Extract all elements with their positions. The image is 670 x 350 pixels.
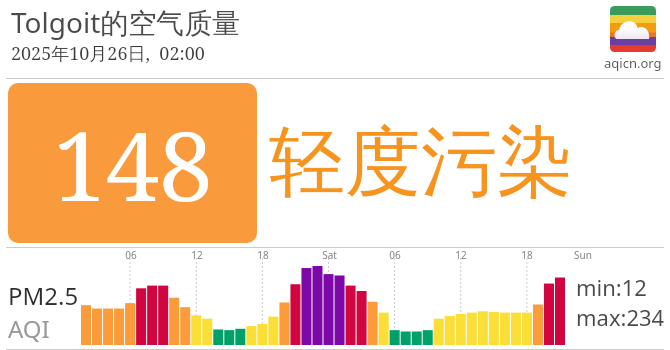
button[interactable]: PM2.5 AQI hourly chart <box>0 248 670 349</box>
staticText: Sun <box>574 248 592 262</box>
staticText: 18 <box>257 248 269 262</box>
staticText: 12 <box>191 248 203 262</box>
staticText: AQI <box>8 312 50 345</box>
staticText: max:234 <box>576 302 665 332</box>
staticText: aqicn.org <box>604 54 662 72</box>
staticText: Tolgoit的空气质量 <box>11 3 241 41</box>
staticText: Sat <box>322 248 337 262</box>
staticText: 148 <box>53 99 213 228</box>
staticText: min:12 <box>576 272 647 302</box>
staticText: PM2.5 <box>8 279 79 312</box>
staticText: 06 <box>389 248 401 262</box>
staticText: 轻度污染 <box>269 115 573 211</box>
staticText: 12 <box>455 248 467 262</box>
staticText: 18 <box>521 248 533 262</box>
button[interactable]: 148 <box>8 83 257 243</box>
button[interactable]: aqicn.org <box>604 6 662 72</box>
staticText: 2025年10月26日, 02:00 <box>11 41 205 66</box>
staticText: 06 <box>125 248 137 262</box>
